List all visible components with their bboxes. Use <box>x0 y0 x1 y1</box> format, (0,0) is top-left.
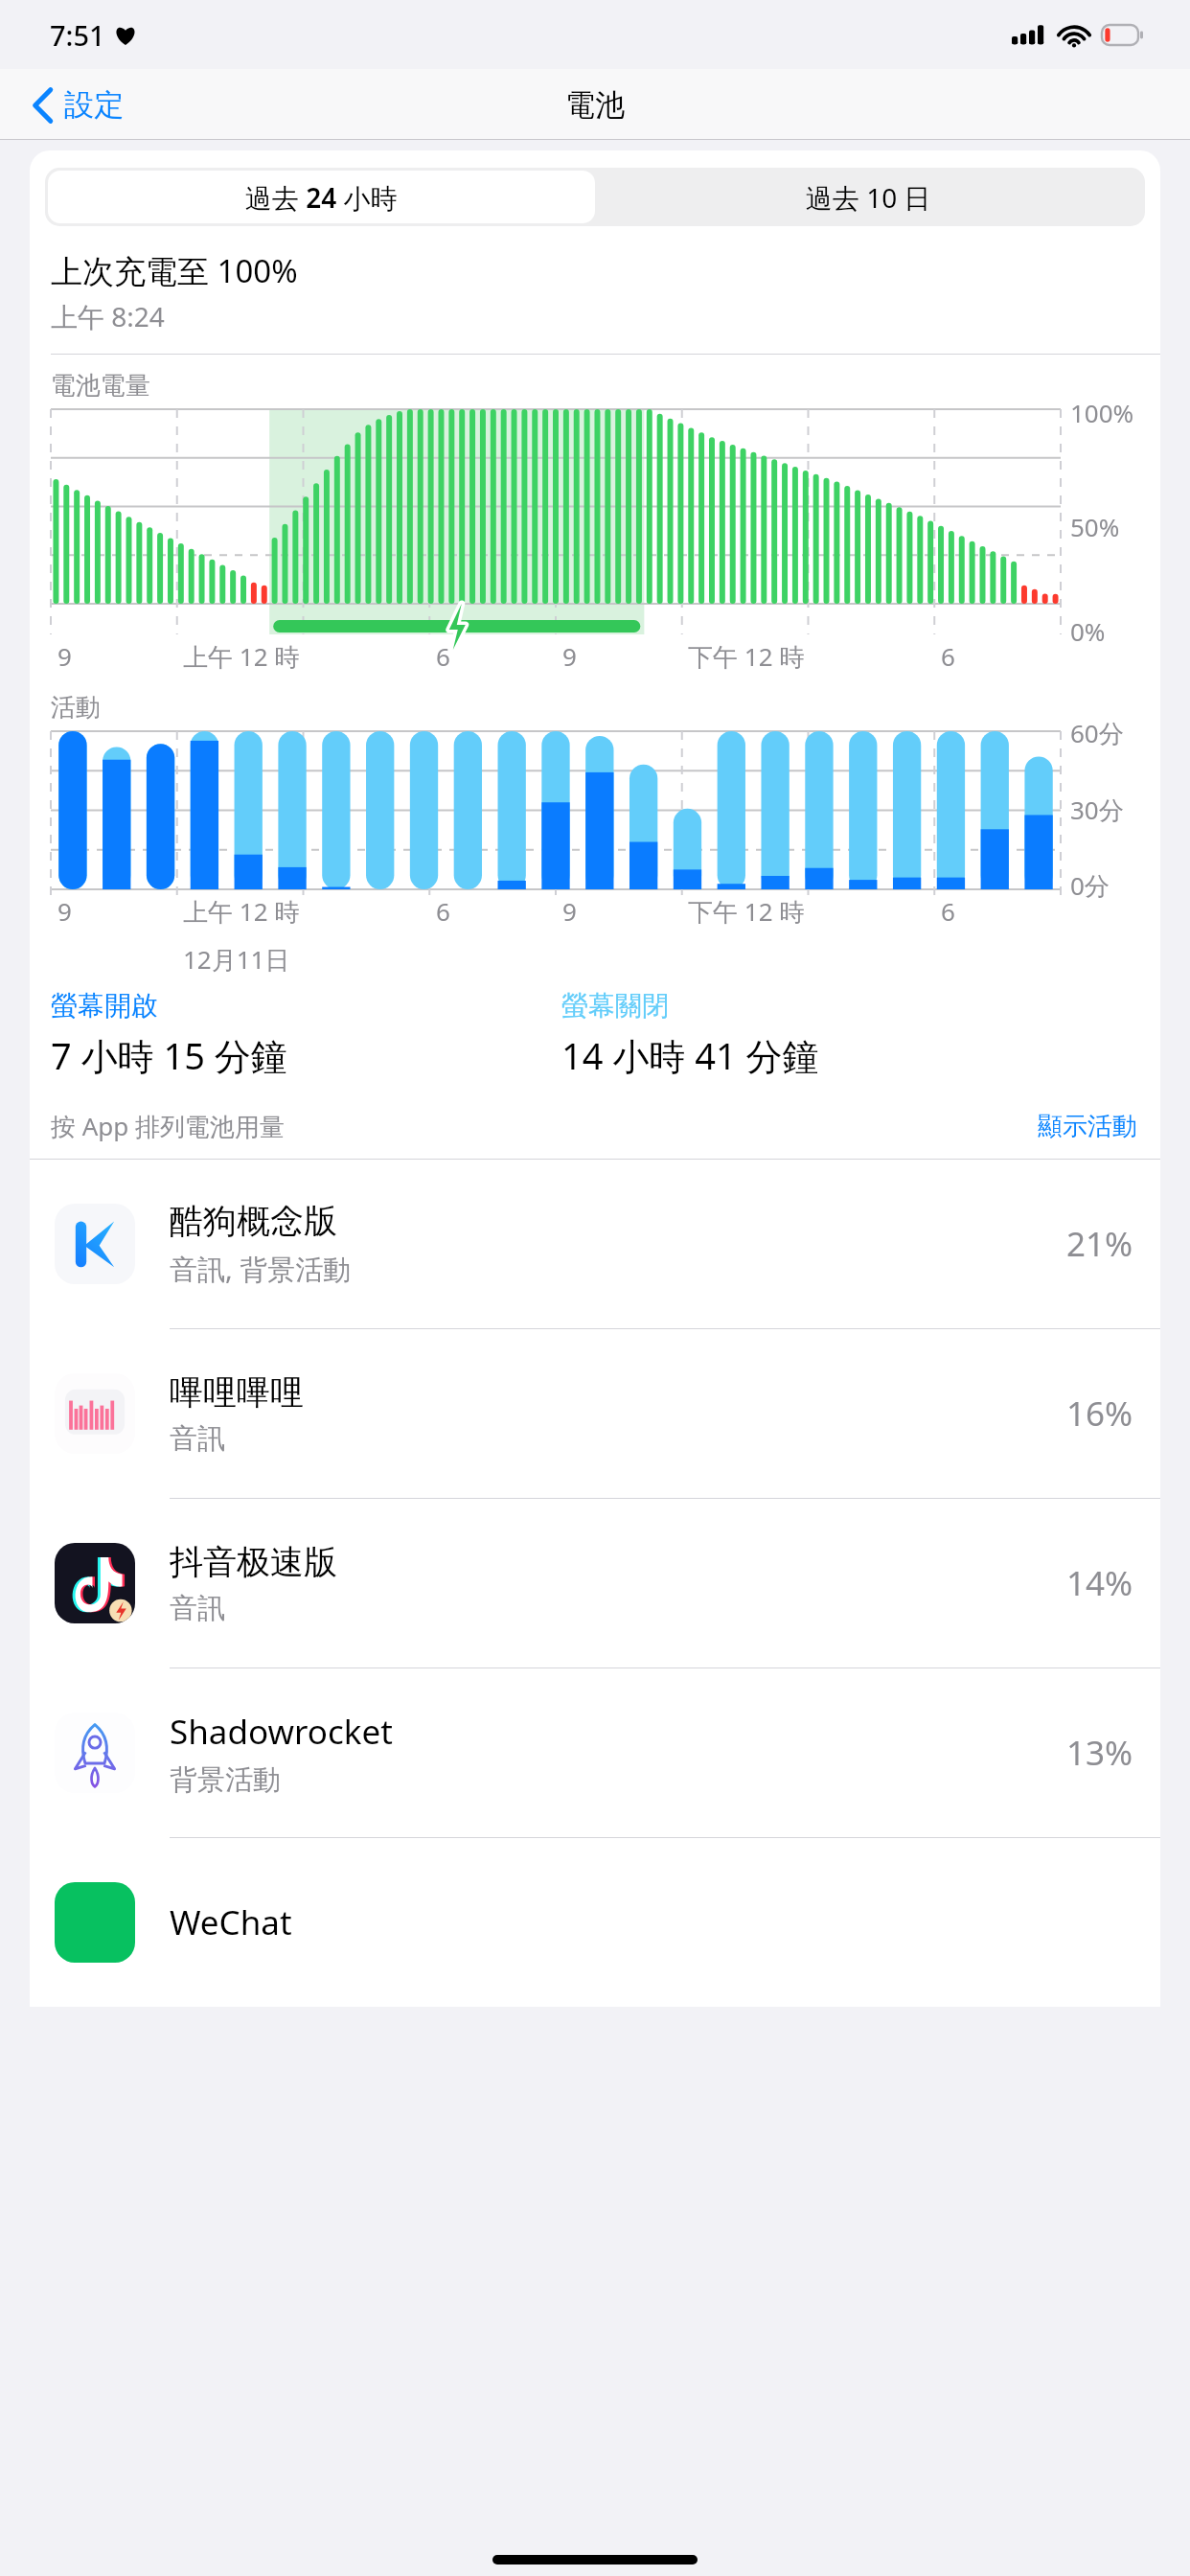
button[interactable]: 嗶哩嗶哩 <box>30 1329 1160 1498</box>
staticText: 6 <box>941 894 955 928</box>
staticText: 100% <box>1070 396 1134 429</box>
staticText: 21% <box>1066 1221 1133 1267</box>
staticText: 50% <box>1070 510 1120 543</box>
staticText: 過去 24 小時 <box>245 179 398 216</box>
other: Back <box>33 87 54 124</box>
staticText: 酷狗概念版 <box>170 1200 337 1242</box>
staticText: 6 <box>436 894 450 928</box>
staticText: 下午 12 時 <box>688 894 805 929</box>
button[interactable]: Back <box>25 79 131 131</box>
staticText: WeChat <box>170 1899 292 1945</box>
staticText: 9 <box>562 894 577 928</box>
staticText: 按 App 排列電池用量 <box>51 1109 286 1143</box>
staticText: 過去 10 日 <box>806 179 931 216</box>
staticText: 上次充電至 100% <box>51 249 298 292</box>
staticText: 14% <box>1066 1560 1133 1606</box>
staticText: 9 <box>57 639 72 673</box>
staticText: 音訊 <box>170 1591 225 1626</box>
staticText: 音訊, 背景活動 <box>170 1250 352 1288</box>
staticText: 9 <box>562 639 577 673</box>
staticText: 螢幕關閉 <box>561 989 669 1023</box>
staticText: 6 <box>436 639 450 673</box>
staticText: 顯示活動 <box>1038 1111 1137 1142</box>
staticText: 上午 12 時 <box>183 639 300 674</box>
staticText: 電池 <box>565 86 625 124</box>
staticText: 抖音极速版 <box>170 1541 337 1583</box>
staticText: 上午 12 時 <box>183 894 300 929</box>
staticText: 上午 8:24 <box>51 298 165 334</box>
staticText: 60分 <box>1070 716 1124 750</box>
staticText: 嗶哩嗶哩 <box>170 1371 304 1414</box>
staticText: 活動 <box>51 692 101 724</box>
staticText: 7 小時 15 分鐘 <box>51 1030 287 1080</box>
button[interactable]: Shadowrocket <box>30 1668 1160 1837</box>
staticText: 9 <box>57 894 72 928</box>
staticText: 設定 <box>64 86 124 124</box>
button[interactable]: 過去 10 日 <box>595 171 1142 223</box>
staticText: Shadowrocket <box>170 1709 393 1755</box>
staticText: 音訊 <box>170 1421 225 1457</box>
staticText: 下午 12 時 <box>688 639 805 674</box>
staticText: 7:51 <box>50 16 105 54</box>
staticText: 6 <box>941 639 955 673</box>
staticText: 0% <box>1070 614 1106 648</box>
button[interactable]: 顯示活動 <box>1038 1111 1137 1142</box>
button[interactable]: 酷狗概念版 <box>30 1160 1160 1328</box>
staticText: 13% <box>1066 1730 1133 1776</box>
button[interactable]: WeChat <box>30 1838 1160 2007</box>
staticText: 12月11日 <box>183 942 290 977</box>
staticText: 16% <box>1066 1391 1133 1437</box>
button[interactable]: 過去 24 小時 <box>48 171 595 223</box>
staticText: 背景活動 <box>170 1762 281 1798</box>
staticText: 14 小時 41 分鐘 <box>561 1030 819 1080</box>
staticText: 30分 <box>1070 793 1124 827</box>
staticText: 0分 <box>1070 868 1110 903</box>
staticText: 螢幕開啟 <box>51 989 158 1023</box>
staticText: 電池電量 <box>51 370 150 402</box>
button[interactable]: 抖音极速版 <box>30 1499 1160 1667</box>
